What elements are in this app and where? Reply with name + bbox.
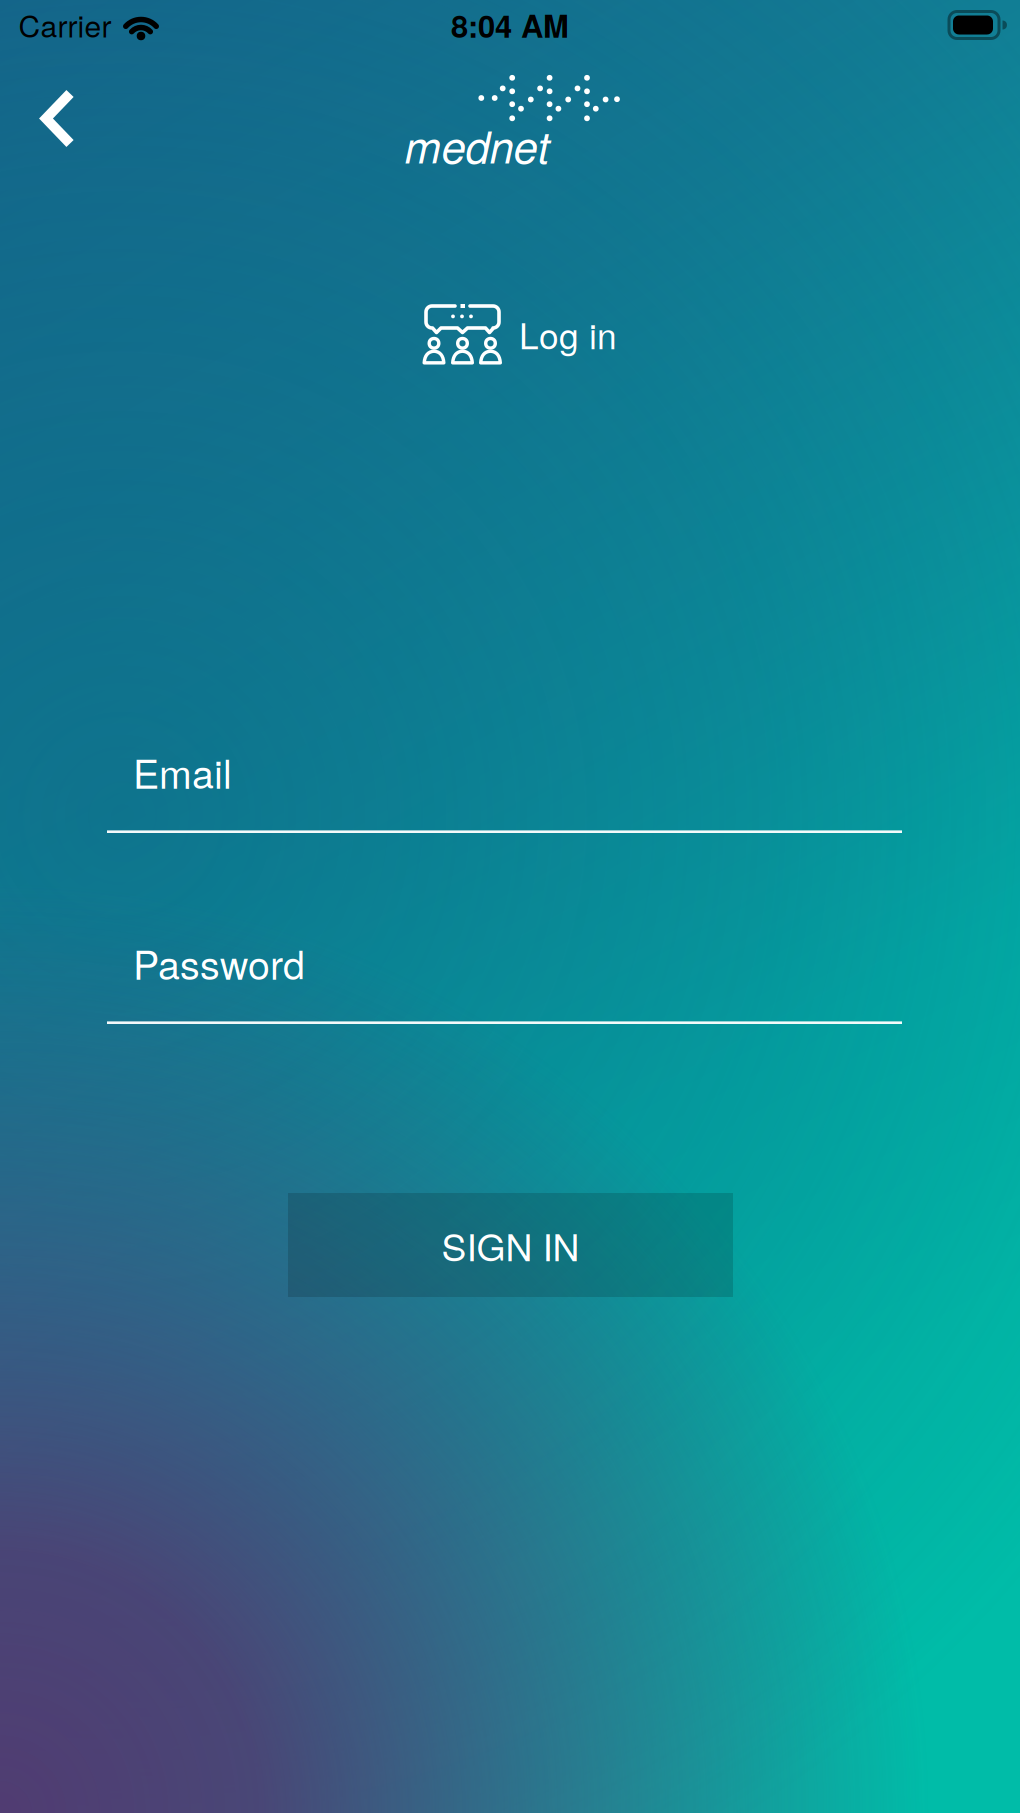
staticText: Log in: [519, 309, 617, 359]
button[interactable]: [26, 88, 86, 148]
staticText: mednet: [404, 114, 549, 176]
button[interactable]: Email: [107, 733, 902, 833]
staticText: Carrier: [18, 3, 111, 46]
staticText: Password: [133, 935, 305, 991]
staticText: Email: [133, 744, 232, 800]
staticText: SIGN IN: [441, 1218, 579, 1272]
button[interactable]: Password: [107, 924, 902, 1024]
staticText: 8:04 AM: [451, 3, 569, 47]
button[interactable]: SIGN IN: [288, 1193, 733, 1297]
